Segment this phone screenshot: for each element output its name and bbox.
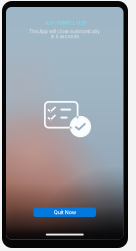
staticText: TEST COMPLETED! — [44, 20, 86, 26]
staticText: in 5 seconds — [51, 34, 79, 39]
staticText: This App will close automatically — [29, 29, 100, 34]
button[interactable]: Quit Now — [33, 207, 96, 217]
staticText: Quit Now — [54, 209, 76, 215]
